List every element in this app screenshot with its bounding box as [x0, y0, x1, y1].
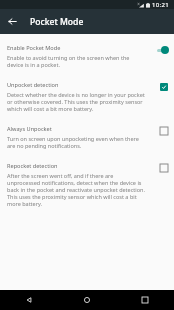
- button[interactable]: Navigate up: [0, 9, 25, 34]
- button[interactable]: Enable Pocket Mode: [156, 45, 169, 55]
- button[interactable]: Enable Pocket Mode: [0, 44, 174, 81]
- button[interactable]: Back: [0, 290, 58, 310]
- button[interactable]: Unchecked: [159, 126, 169, 136]
- staticText: Detect whether the device is no longer i…: [7, 91, 146, 112]
- staticText: After the screen went off, and if there …: [7, 172, 146, 207]
- staticText: Pocket Mode: [30, 16, 84, 28]
- staticText: Repocket detection: [7, 162, 58, 170]
- button[interactable]: Unchecked: [159, 163, 169, 173]
- staticText: Enable to avoid turning on the screen wh…: [7, 54, 146, 68]
- button[interactable]: Unpocket detection: [0, 81, 174, 125]
- button[interactable]: Repocket detection: [0, 162, 174, 220]
- button[interactable]: Always Unpocket: [0, 125, 174, 162]
- staticText: 10:21: [152, 1, 170, 9]
- staticText: Turn on screen upon unpocketing even whe…: [7, 135, 146, 149]
- button[interactable]: Recent apps: [116, 290, 174, 310]
- staticText: Unpocket detection: [7, 81, 59, 89]
- button[interactable]: Checked: [159, 82, 169, 92]
- staticText: Enable Pocket Mode: [7, 44, 61, 52]
- staticText: Always Unpocket: [7, 125, 52, 133]
- button[interactable]: Home: [58, 290, 116, 310]
